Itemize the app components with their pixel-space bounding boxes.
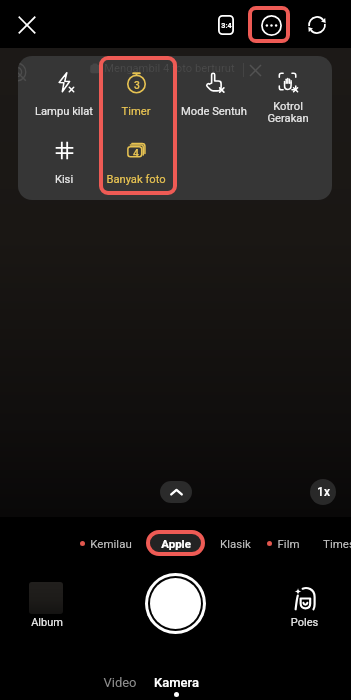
button[interactable]: Close (9, 7, 45, 43)
staticText: Kemilau (90, 537, 132, 550)
staticText: Kotrol Gerakan (255, 100, 321, 122)
button[interactable]: Kotrol Gerakan (255, 64, 321, 122)
button[interactable]: Expand camera options (160, 481, 192, 503)
button[interactable]: Mode Sentuh (172, 64, 256, 122)
button[interactable]: Kisi (22, 132, 106, 190)
button[interactable]: More options (256, 10, 287, 41)
button[interactable]: Aspect ratio 3 by 4 (212, 11, 240, 39)
staticText: 4 (133, 147, 139, 159)
button[interactable]: Lampu kilat (22, 64, 106, 122)
button[interactable]: Poles beauty filter (282, 581, 327, 629)
staticText: Album (24, 616, 70, 629)
button[interactable]: Apple (150, 534, 202, 552)
staticText: Timer (106, 105, 166, 118)
button[interactable]: 1x (310, 479, 336, 505)
staticText: Kamera (154, 675, 199, 690)
staticText: Poles (282, 616, 327, 629)
button[interactable]: Album (29, 582, 63, 614)
staticText: Apple (161, 537, 191, 550)
staticText: Banyak foto (100, 173, 172, 186)
staticText: Film (277, 537, 300, 550)
button[interactable]: Kemilau (80, 534, 132, 552)
staticText: 1x (317, 485, 330, 499)
button[interactable]: 4 (100, 132, 172, 190)
staticText: Lampu kilat (22, 105, 106, 118)
button[interactable]: Klasik (220, 534, 251, 552)
button[interactable]: Film (267, 534, 300, 552)
button[interactable]: Kamera (150, 670, 202, 694)
staticText: Video (103, 675, 137, 690)
button[interactable]: Times (323, 534, 351, 552)
staticText: Kisi (22, 173, 106, 186)
staticText: Times (323, 537, 351, 550)
button[interactable]: Take photo (145, 573, 206, 634)
button[interactable]: Switch camera (302, 10, 332, 40)
staticText: Mode Sentuh (172, 105, 256, 118)
button[interactable]: Video (96, 670, 144, 694)
staticText: Klasik (220, 537, 251, 550)
button[interactable]: 3 (106, 64, 166, 122)
staticText: Mengambil 4 foto berturut (104, 62, 235, 75)
staticText: 3:4 (221, 21, 232, 29)
staticText: 3 (134, 79, 140, 91)
